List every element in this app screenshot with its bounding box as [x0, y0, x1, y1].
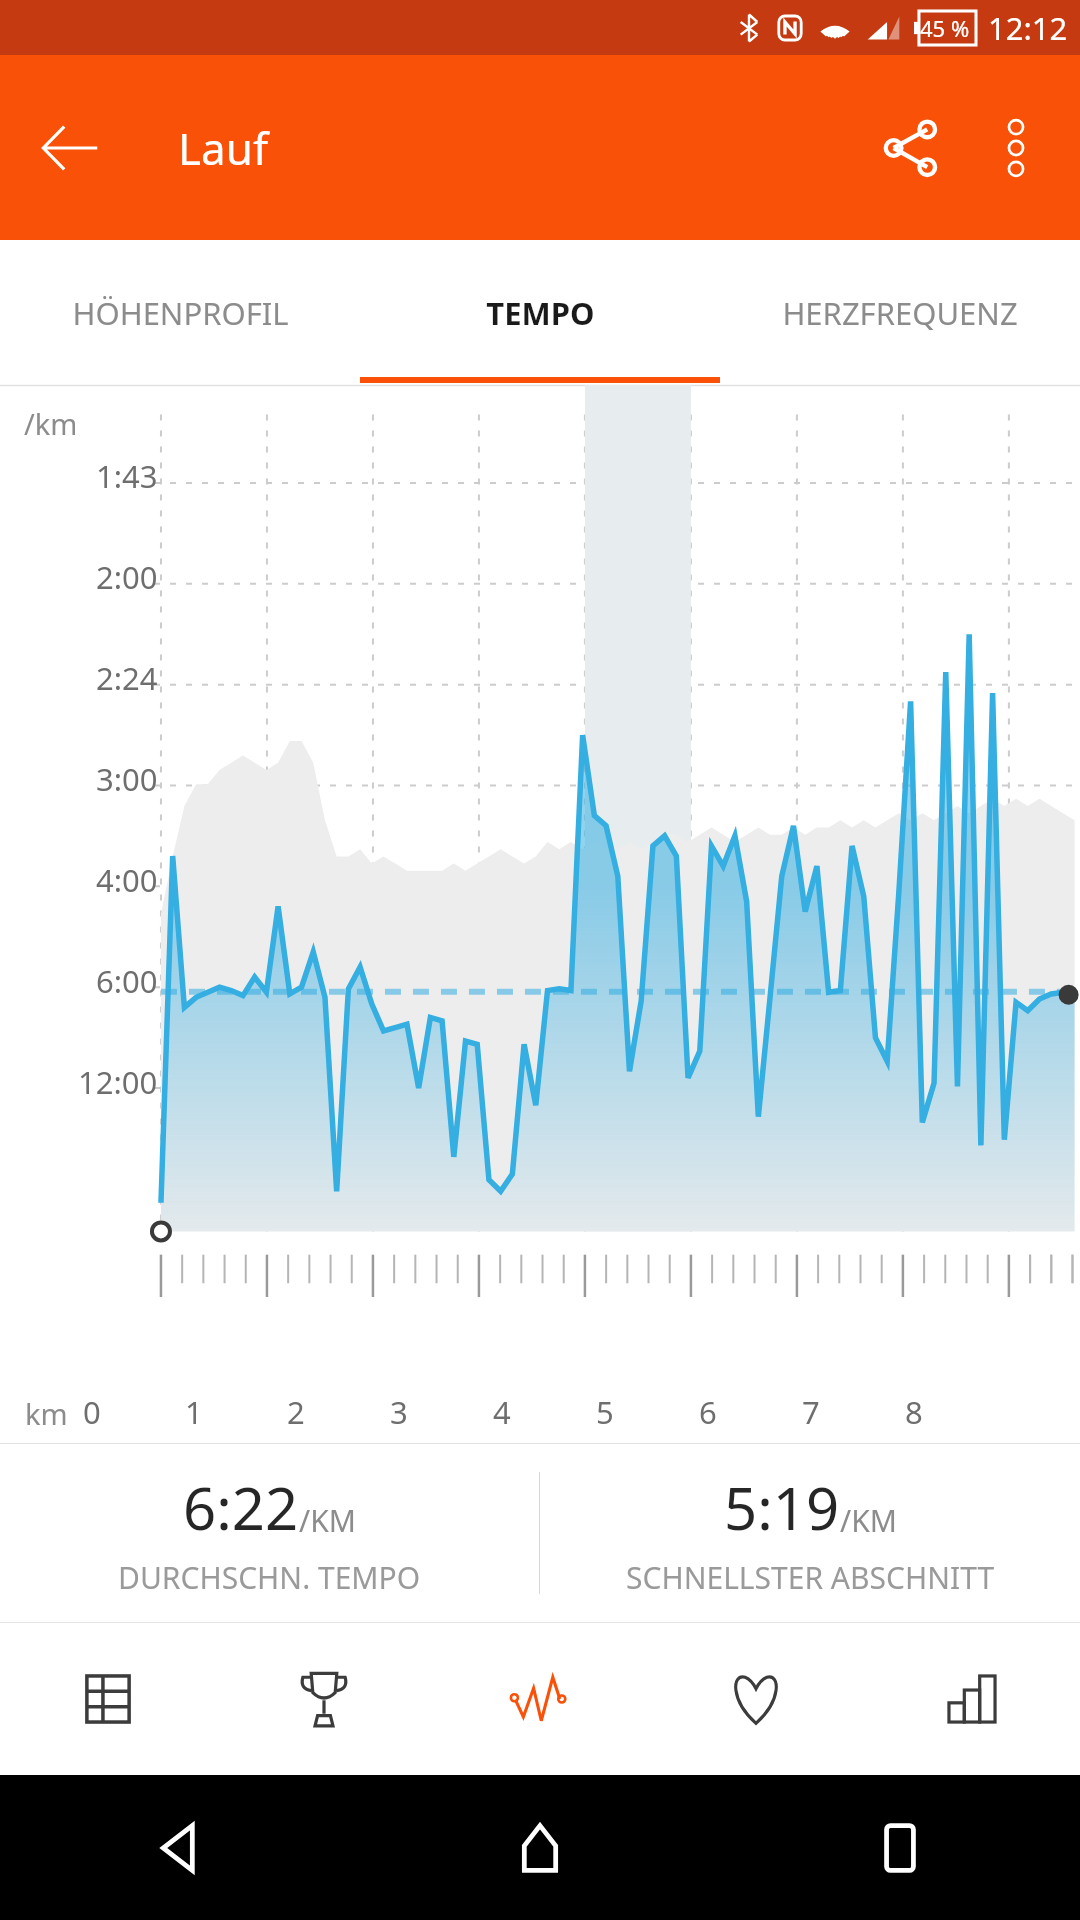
staticText: SCHNELLSTER ABSCHNITT: [626, 1557, 995, 1598]
staticText: km: [25, 1394, 68, 1433]
staticText: 4: [493, 1391, 511, 1433]
button[interactable]: Records: [216, 1623, 432, 1775]
staticText: 1:43: [96, 455, 158, 497]
staticText: 2: [287, 1391, 305, 1433]
staticText: 4:00: [96, 859, 158, 901]
button[interactable]: Home: [360, 1775, 720, 1920]
staticText: 0: [83, 1391, 101, 1433]
staticText: /KM: [840, 1500, 897, 1541]
staticText: 6:00: [96, 960, 158, 1002]
button[interactable]: Back: [0, 1775, 360, 1920]
button[interactable]: Share: [856, 93, 966, 203]
staticText: TEMPO: [486, 292, 595, 334]
staticText: 8: [905, 1391, 923, 1433]
staticText: 12:12: [988, 7, 1068, 49]
staticText: 3: [390, 1391, 408, 1433]
button[interactable]: Back: [22, 100, 118, 196]
staticText: Lauf: [178, 118, 269, 178]
staticText: 1: [185, 1391, 203, 1433]
staticText: HÖHENPROFIL: [72, 292, 289, 334]
staticText: 2:24: [96, 657, 158, 699]
button[interactable]: 5:19: [540, 1444, 1080, 1622]
button[interactable]: Table view: [0, 1623, 216, 1775]
staticText: 5: [596, 1391, 614, 1433]
button[interactable]: TEMPO: [360, 240, 720, 385]
staticText: 6: [699, 1391, 717, 1433]
staticText: 6:22: [183, 1468, 299, 1547]
staticText: 45 %: [920, 13, 970, 43]
staticText: 2:00: [96, 556, 158, 598]
staticText: /KM: [299, 1500, 356, 1541]
button[interactable]: Statistics: [864, 1623, 1080, 1775]
staticText: HERZFREQUENZ: [782, 292, 1018, 334]
button[interactable]: More options: [966, 98, 1066, 198]
staticText: 7: [802, 1391, 820, 1433]
button[interactable]: 6:22: [0, 1444, 539, 1622]
staticText: /km: [24, 404, 78, 443]
button[interactable]: HÖHENPROFIL: [0, 240, 360, 385]
button[interactable]: Heart rate: [648, 1623, 864, 1775]
staticText: DURCHSCHN. TEMPO: [118, 1557, 421, 1598]
button[interactable]: Pace graph: [432, 1623, 648, 1775]
button[interactable]: HERZFREQUENZ: [720, 240, 1080, 385]
button[interactable]: Recent apps: [720, 1775, 1080, 1920]
staticText: 12:00: [78, 1061, 158, 1103]
staticText: 5:19: [724, 1468, 840, 1547]
staticText: 3:00: [96, 758, 158, 800]
